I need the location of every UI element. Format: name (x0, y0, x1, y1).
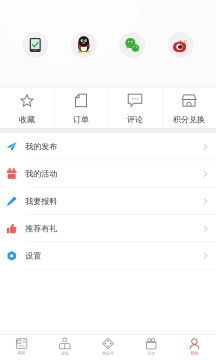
button[interactable]: 我要报料 (0, 188, 216, 215)
staticText: 收藏 (19, 115, 35, 124)
button[interactable]: 活动 (130, 334, 173, 360)
staticText: 设置 (25, 251, 41, 261)
button[interactable]: 订单 (54, 87, 108, 128)
button[interactable]: QQ 登录 (71, 32, 97, 58)
button[interactable]: 评论 (108, 87, 162, 128)
button[interactable]: 衡阳号 (86, 334, 130, 360)
staticText: 我的活动 (25, 169, 57, 179)
staticText: 衡阳号 (102, 351, 114, 356)
staticText: 活动 (147, 351, 155, 356)
staticText: 我的发布 (25, 142, 57, 151)
button[interactable]: 微信登录 (119, 32, 145, 58)
staticText: 读报 (61, 351, 69, 356)
button[interactable]: 我的发布 (0, 133, 216, 160)
staticText: 我要报料 (25, 196, 57, 206)
button[interactable]: 新闻 (0, 334, 43, 360)
button[interactable]: 微博登录 (168, 32, 194, 58)
button[interactable]: 设置 (0, 242, 216, 269)
staticText: 我的 (190, 351, 198, 356)
staticText: 评论 (127, 115, 143, 124)
button[interactable]: 积分兑换 (162, 87, 216, 128)
button[interactable]: 读报 (43, 334, 86, 360)
button[interactable]: 我的 (173, 334, 216, 360)
button[interactable]: 我的活动 (0, 160, 216, 188)
button[interactable]: 收藏 (0, 87, 54, 128)
staticText: 积分兑换 (173, 115, 205, 124)
button[interactable]: 推荐有礼 (0, 215, 216, 242)
button[interactable]: 手机号登录 (22, 32, 48, 58)
staticText: 推荐有礼 (25, 224, 57, 233)
staticText: 新闻 (18, 350, 26, 355)
staticText: 订单 (73, 115, 89, 124)
